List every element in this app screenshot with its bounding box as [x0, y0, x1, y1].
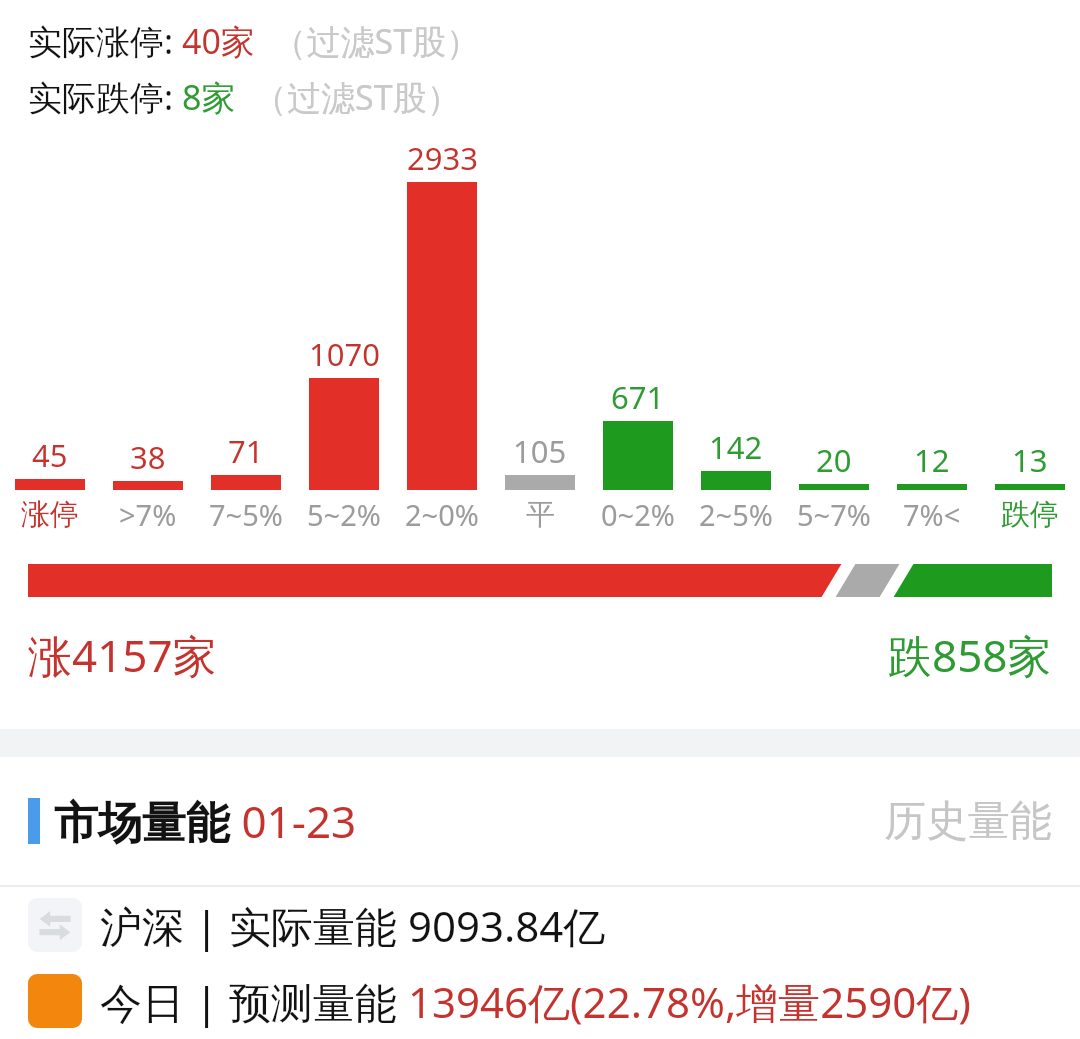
staticText: 实际涨停: 40家 （过滤ST股） [28, 18, 481, 64]
staticText: 671 [611, 376, 665, 418]
staticText: 跌停 [1001, 496, 1059, 533]
staticText: 7%< [903, 495, 961, 534]
button[interactable]: 38 [100, 436, 196, 490]
button[interactable]: 45 [2, 434, 98, 490]
staticText: 2933 [407, 137, 478, 179]
button[interactable]: 2933 [394, 137, 490, 490]
staticText: 71 [228, 430, 264, 472]
staticText: 142 [709, 426, 763, 468]
staticText: 平 [526, 496, 555, 533]
button[interactable]: 13 [982, 439, 1078, 490]
staticText: 市场量能 01-23 [54, 791, 357, 851]
button[interactable]: 671 [590, 376, 686, 490]
other: 今日 [28, 974, 82, 1028]
staticText: 13 [1012, 439, 1048, 481]
staticText: 今日 | 预测量能 13946亿(22.78%,增量2590亿) [100, 973, 971, 1030]
button[interactable]: 涨4157家 [28, 625, 217, 685]
staticText: 38 [130, 436, 166, 478]
staticText: 5~2% [307, 495, 381, 534]
staticText: 沪深 | 实际量能 9093.84亿 [100, 897, 606, 954]
staticText: 45 [32, 434, 68, 476]
staticText: 105 [513, 430, 567, 472]
staticText: 2~0% [405, 495, 479, 534]
button[interactable]: 历史量能 [884, 795, 1052, 848]
staticText: 1070 [309, 333, 380, 375]
button[interactable]: 142 [688, 426, 784, 490]
button[interactable]: 12 [884, 439, 980, 490]
staticText: 2~5% [699, 495, 773, 534]
button[interactable]: 105 [492, 430, 588, 490]
staticText: 7~5% [209, 495, 283, 534]
button[interactable]: 今日 [28, 963, 1080, 1039]
staticText: 涨停 [21, 496, 79, 533]
staticText: 0~2% [601, 495, 675, 534]
button[interactable]: 1070 [296, 333, 392, 490]
staticText: 5~7% [797, 495, 871, 534]
button[interactable]: 71 [198, 430, 294, 490]
staticText: 12 [914, 439, 950, 481]
button[interactable] [28, 564, 1052, 597]
other: 沪深 切换 [28, 898, 82, 952]
button[interactable]: 20 [786, 439, 882, 490]
staticText: >7% [119, 495, 177, 534]
button[interactable]: 跌858家 [888, 625, 1052, 685]
staticText: 20 [816, 439, 852, 481]
button[interactable]: 沪深 切换 [28, 887, 1080, 963]
staticText: 实际跌停: 8家 （过滤ST股） [28, 74, 461, 120]
